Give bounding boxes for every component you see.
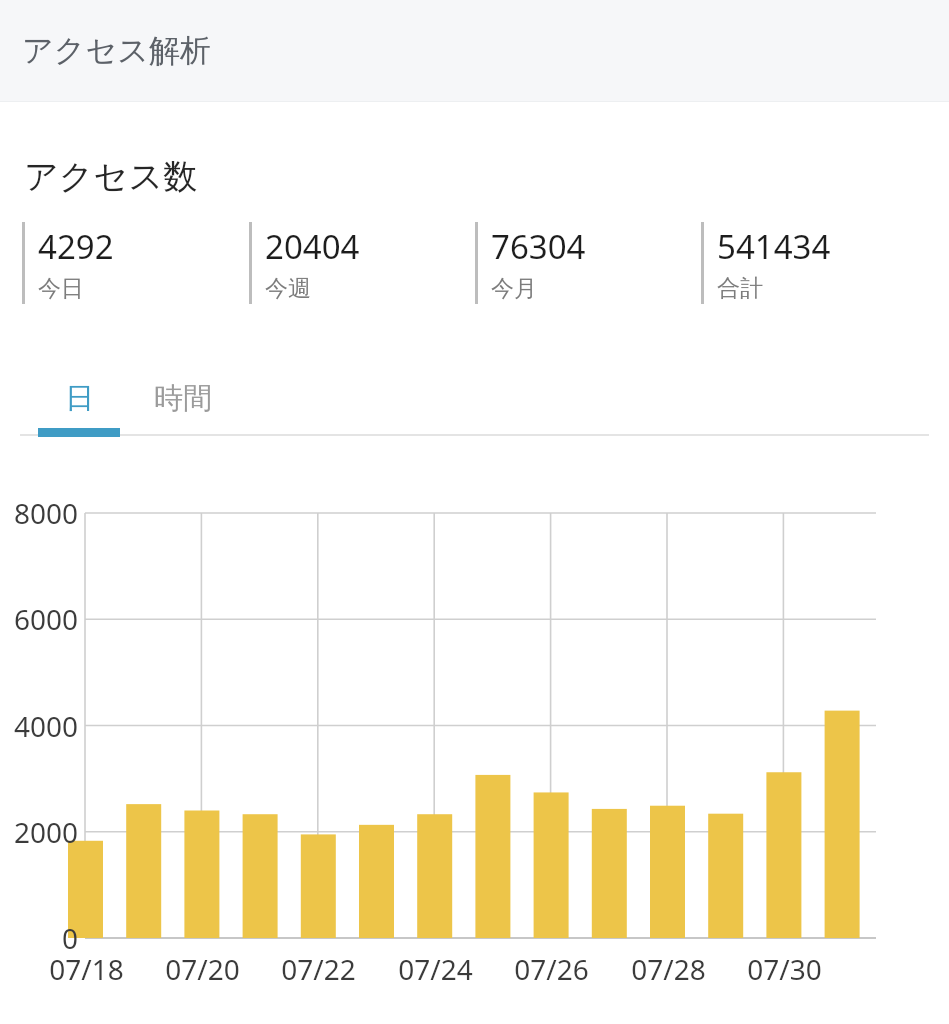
staticText: 8000 [13,494,78,532]
button[interactable]: 20404 [249,222,475,304]
button[interactable]: アクセス解析 [0,0,949,101]
staticText: 07/20 [165,950,240,988]
staticText: 合計 [717,274,763,303]
button[interactable]: 541434 [701,222,927,304]
staticText: アクセス数 [24,155,198,198]
staticText: 今月 [491,274,537,303]
staticText: 07/30 [747,950,822,988]
staticText: 今週 [265,274,311,303]
staticText: 76304 [491,224,586,269]
staticText: 日 [65,380,94,417]
staticText: 4000 [13,707,78,745]
staticText: 07/22 [281,950,356,988]
button[interactable]: 4292 [22,222,249,304]
staticText: 07/18 [49,950,124,988]
staticText: 2000 [13,813,78,851]
button[interactable]: 時間 [128,368,238,428]
staticText: 07/28 [631,950,706,988]
staticText: 20404 [265,224,360,269]
button[interactable]: 76304 [475,222,701,304]
staticText: 今日 [38,274,84,303]
button[interactable]: 日 [38,368,120,428]
staticText: 0 [61,919,78,957]
staticText: 07/24 [398,950,473,988]
staticText: 時間 [154,380,212,417]
staticText: 4292 [38,224,114,269]
staticText: 541434 [717,224,831,269]
staticText: 6000 [13,600,78,638]
staticText: アクセス解析 [22,31,211,70]
staticText: 07/26 [514,950,589,988]
